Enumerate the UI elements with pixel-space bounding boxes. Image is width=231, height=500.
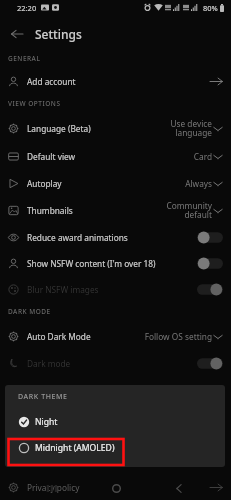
button[interactable]: Add account: [0, 68, 231, 94]
staticText: Show NSFW content (I'm over 18): [27, 258, 156, 269]
staticText: Community default: [166, 200, 212, 221]
staticText: Add account: [27, 76, 76, 87]
button[interactable]: Thumbnails: [0, 197, 231, 223]
staticText: 22:20: [17, 3, 37, 13]
button[interactable]: Autoplay: [0, 170, 231, 196]
button[interactable]: Midnight (AMOLED): [5, 435, 225, 461]
button[interactable]: Back: [0, 17, 34, 51]
button[interactable]: Back: [167, 476, 191, 500]
staticText: GENERAL: [8, 54, 41, 63]
button[interactable]: Reduce award animations: [0, 224, 231, 250]
staticText: Autoplay: [27, 178, 62, 189]
button[interactable]: Recents: [40, 476, 64, 500]
button[interactable]: Privacy policy: [0, 474, 231, 500]
staticText: 80%: [203, 3, 218, 13]
staticText: Thumbnails: [27, 205, 73, 216]
button[interactable]: Blur NSFW images: [0, 276, 231, 302]
button[interactable]: Home: [104, 476, 128, 500]
button[interactable]: Default view: [0, 143, 231, 169]
staticText: Blur NSFW images: [27, 284, 99, 295]
button[interactable]: Language (Beta): [0, 115, 231, 141]
staticText: Midnight (AMOLED): [35, 442, 115, 454]
button[interactable]: Show NSFW content (I'm over 18): [0, 250, 231, 276]
staticText: Settings: [35, 26, 82, 42]
staticText: DARK THEME: [18, 392, 68, 402]
staticText: Use device language: [170, 118, 212, 139]
button[interactable]: Auto Dark Mode: [0, 323, 231, 349]
button[interactable]: Dark mode: [0, 350, 231, 376]
staticText: Reduce award animations: [27, 232, 128, 243]
staticText: Follow OS setting: [144, 331, 212, 342]
staticText: Card: [193, 151, 212, 162]
staticText: VIEW OPTIONS: [8, 99, 61, 108]
staticText: Night: [35, 416, 58, 428]
staticText: Auto Dark Mode: [27, 331, 91, 342]
staticText: Language (Beta): [27, 123, 91, 134]
staticText: DARK MODE: [8, 307, 51, 316]
staticText: Always: [185, 178, 212, 189]
staticText: Privacy policy: [27, 482, 80, 493]
staticText: Default view: [27, 151, 76, 162]
staticText: Dark mode: [27, 358, 71, 369]
button[interactable]: Night: [5, 409, 225, 435]
